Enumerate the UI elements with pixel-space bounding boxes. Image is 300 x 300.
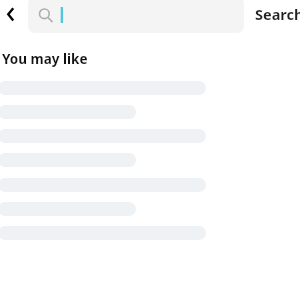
staticText: You may like <box>2 50 88 68</box>
button[interactable]: Search input <box>28 0 244 33</box>
button[interactable]: Search <box>255 4 300 24</box>
staticText: Search <box>255 4 300 24</box>
button[interactable]: Back <box>0 2 20 27</box>
